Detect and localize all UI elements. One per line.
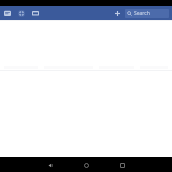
button[interactable]: Friend Requests: [17, 8, 26, 18]
button[interactable]: Create post: [113, 9, 122, 18]
button[interactable]: Back: [44, 159, 56, 171]
button[interactable]: News Feed: [3, 8, 12, 18]
button[interactable]: Notifications: [31, 8, 40, 18]
button[interactable]: Home: [80, 159, 92, 171]
staticText: Search: [134, 10, 150, 17]
button[interactable]: Recent apps: [116, 159, 128, 171]
button[interactable]: Search: [125, 9, 169, 18]
